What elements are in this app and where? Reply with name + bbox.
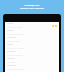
button[interactable]: Settings [5,64,59,71]
button[interactable]: Reports [5,50,59,57]
staticText: 3 new messages [7,26,23,29]
staticText: Archive [7,57,16,60]
staticText: Weekly summary [7,54,24,57]
button[interactable]: Projects [5,36,59,43]
staticText: Morning standup [7,33,24,36]
staticText: 5 members online [7,47,25,50]
staticText: Settings [7,64,16,67]
button[interactable]: Team [5,43,59,50]
staticText: Reports [7,50,16,53]
staticText: Inbox [7,22,14,25]
staticText: Team [7,43,13,46]
staticText: Design review [7,40,21,43]
button[interactable]: Today [5,29,59,36]
button[interactable]: Inbox [5,22,59,29]
staticText: 128 items [7,61,17,64]
staticText: Projects [7,36,16,39]
staticText: Available for [24,3,40,6]
staticText: Today [7,29,14,32]
staticText: iPhone and Android [20,6,44,9]
staticText: Account & privacy [7,68,24,71]
button[interactable]: Archive [5,57,59,64]
